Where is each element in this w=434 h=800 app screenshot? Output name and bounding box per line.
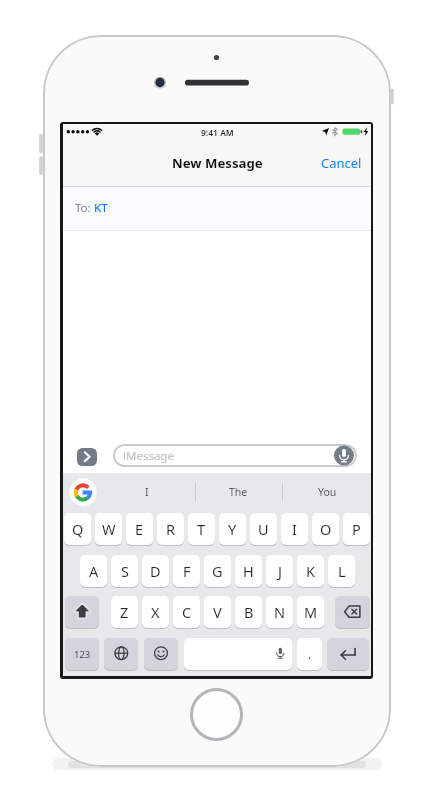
button[interactable]: G: [204, 555, 231, 587]
button[interactable]: 123: [65, 638, 99, 670]
button[interactable]: [77, 448, 97, 466]
button[interactable]: I: [281, 513, 308, 545]
staticText: N: [274, 602, 286, 622]
button[interactable]: A: [80, 555, 107, 587]
staticText: J: [278, 561, 282, 581]
staticText: Z: [120, 602, 129, 622]
staticText: M: [304, 602, 318, 622]
staticText: KT: [94, 200, 108, 216]
staticText: E: [135, 519, 144, 539]
button[interactable]: [335, 596, 370, 628]
button[interactable]: B: [235, 596, 262, 628]
button[interactable]: Cancel: [318, 152, 362, 174]
staticText: I: [292, 519, 297, 539]
button[interactable]: V: [204, 596, 231, 628]
button[interactable]: X: [142, 596, 169, 628]
staticText: B: [244, 602, 254, 622]
staticText: P: [352, 519, 361, 539]
button[interactable]: P: [343, 513, 370, 545]
staticText: Q: [72, 519, 84, 539]
button[interactable]: You: [307, 482, 347, 502]
button[interactable]: C: [173, 596, 200, 628]
button[interactable]: [144, 638, 178, 670]
button[interactable]: [327, 638, 369, 670]
staticText: New Message: [172, 154, 263, 172]
button[interactable]: D: [142, 555, 169, 587]
button[interactable]: T: [188, 513, 215, 545]
button[interactable]: [184, 638, 292, 670]
staticText: 123: [74, 648, 91, 661]
button[interactable]: [65, 596, 99, 628]
button[interactable]: R: [157, 513, 184, 545]
button[interactable]: [113, 444, 357, 467]
button[interactable]: I: [127, 482, 167, 502]
button[interactable]: N: [266, 596, 293, 628]
button[interactable]: The: [218, 482, 258, 502]
staticText: F: [183, 561, 191, 581]
staticText: A: [89, 561, 99, 581]
button[interactable]: M: [297, 596, 324, 628]
button[interactable]: Y: [219, 513, 246, 545]
button[interactable]: K: [297, 555, 324, 587]
button[interactable]: [104, 638, 138, 670]
button[interactable]: S: [111, 555, 138, 587]
staticText: 9:41 AM: [201, 127, 234, 139]
staticText: .: [308, 646, 312, 662]
button[interactable]: Q: [64, 513, 91, 545]
staticText: C: [182, 602, 192, 622]
staticText: G: [212, 561, 223, 581]
staticText: I: [145, 485, 149, 499]
button[interactable]: O: [312, 513, 339, 545]
staticText: S: [121, 561, 129, 581]
staticText: K: [306, 561, 315, 581]
button[interactable]: U: [250, 513, 277, 545]
staticText: L: [338, 561, 346, 581]
button[interactable]: F: [173, 555, 200, 587]
button[interactable]: [63, 187, 371, 231]
staticText: W: [102, 519, 116, 539]
staticText: To:: [75, 200, 94, 216]
button[interactable]: H: [235, 555, 262, 587]
staticText: O: [320, 519, 332, 539]
staticText: iMessage: [123, 448, 174, 464]
staticText: R: [166, 519, 176, 539]
button[interactable]: W: [95, 513, 122, 545]
staticText: H: [243, 561, 254, 581]
staticText: The: [229, 485, 248, 499]
button[interactable]: .: [297, 638, 322, 670]
button[interactable]: L: [328, 555, 355, 587]
staticText: Cancel: [321, 154, 362, 172]
staticText: T: [197, 519, 206, 539]
button[interactable]: Z: [111, 596, 138, 628]
staticText: V: [213, 602, 222, 622]
button[interactable]: E: [126, 513, 153, 545]
button[interactable]: J: [266, 555, 293, 587]
staticText: U: [258, 519, 269, 539]
staticText: You: [318, 485, 337, 499]
staticText: Y: [228, 519, 237, 539]
staticText: X: [151, 602, 160, 622]
staticText: D: [150, 561, 161, 581]
